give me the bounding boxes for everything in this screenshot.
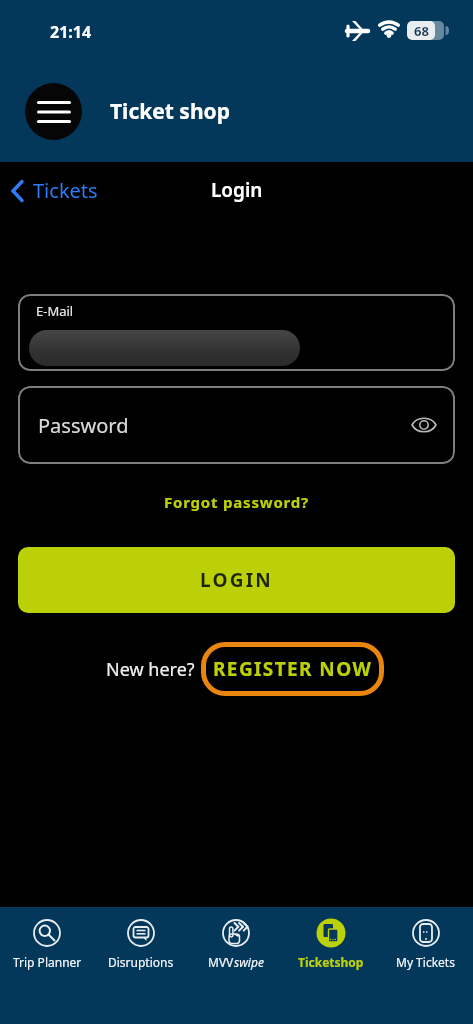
button[interactable]: E-Mail [18,294,455,371]
staticText: Password [38,412,129,439]
staticText: swipe [234,954,264,970]
button[interactable]: REGISTER NOW [201,642,384,696]
button[interactable]: Disruptions [94,918,188,970]
button[interactable]: Ticketshop [283,918,378,970]
staticText: Ticketshop [298,954,364,970]
button[interactable]: Forgot password? [164,492,310,512]
staticText: LOGIN [200,567,273,593]
staticText: E-Mail [36,302,74,320]
button[interactable]: LOGIN [18,547,455,613]
staticText: Disruptions [108,954,174,970]
staticText: REGISTER NOW [213,656,373,682]
staticText: MVV [208,954,234,970]
button[interactable]: MVV [188,918,283,970]
button[interactable]: Password [18,386,455,464]
button[interactable]: Trip Planner [0,918,94,970]
staticText: Trip Planner [13,954,82,970]
staticText: Ticket shop [110,97,230,126]
staticText: Login [211,177,263,203]
staticText: 21:14 [50,21,92,43]
staticText: 68 [414,22,429,40]
button[interactable]: Tickets [10,177,98,204]
staticText: My Tickets [396,954,455,970]
button[interactable]: My Tickets [378,918,473,970]
staticText: New here? [106,657,195,682]
staticText: Forgot password? [164,492,310,512]
staticText: Tickets [33,177,98,204]
button[interactable] [25,83,82,140]
